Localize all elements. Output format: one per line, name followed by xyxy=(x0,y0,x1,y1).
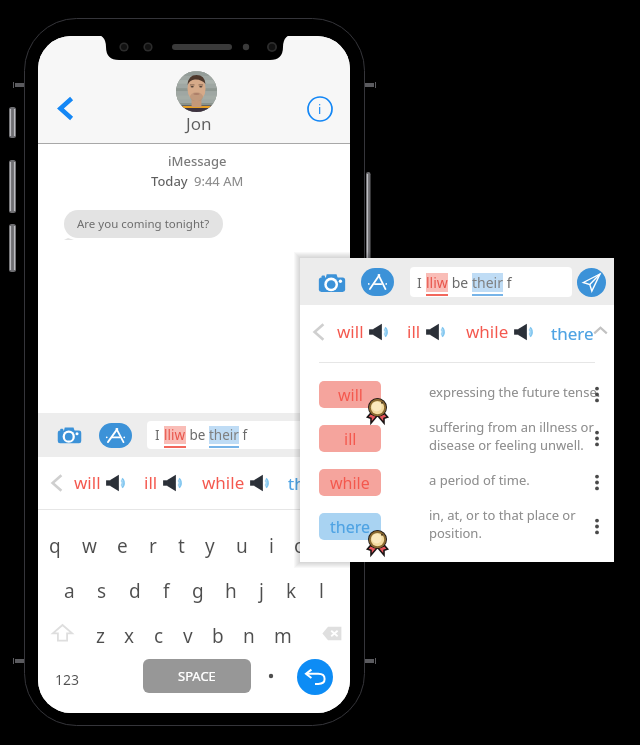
button[interactable]: SPACE xyxy=(143,659,251,693)
button[interactable]: Camera xyxy=(57,423,82,446)
button[interactable]: I xyxy=(147,421,350,449)
button[interactable]: z xyxy=(93,621,108,651)
staticText: y xyxy=(205,533,215,559)
button[interactable] xyxy=(267,672,275,680)
button[interactable]: h xyxy=(222,576,240,606)
button[interactable]: i xyxy=(266,531,277,561)
button[interactable]: n xyxy=(240,621,258,651)
staticText: ill xyxy=(407,320,421,343)
button[interactable]: v xyxy=(180,621,196,651)
button[interactable]: p xyxy=(324,531,342,561)
staticText: I xyxy=(417,273,426,292)
staticText: expressing the future tense. xyxy=(429,383,601,401)
button[interactable]: Details xyxy=(307,96,333,122)
button[interactable]: ill xyxy=(407,318,447,345)
staticText: f xyxy=(239,426,248,444)
button[interactable]: Back xyxy=(56,96,76,121)
staticText: f xyxy=(163,578,170,604)
button[interactable]: Previous xyxy=(309,320,329,344)
staticText: in, at, or to that place or xyxy=(429,506,576,524)
button[interactable]: while xyxy=(300,469,614,513)
staticText: their xyxy=(209,426,239,444)
button[interactable]: d xyxy=(126,576,144,606)
button[interactable]: ill xyxy=(300,425,614,469)
staticText: ill xyxy=(344,428,357,450)
button[interactable]: More options xyxy=(591,474,603,491)
button[interactable]: Collapse xyxy=(593,324,608,337)
staticText: while xyxy=(330,472,370,494)
button[interactable]: Shift xyxy=(51,623,74,643)
button[interactable] xyxy=(176,71,217,112)
button[interactable]: j xyxy=(256,576,267,606)
button[interactable]: Send xyxy=(577,268,606,297)
button[interactable]: c xyxy=(151,621,167,651)
button[interactable]: l xyxy=(316,576,327,606)
staticText: will xyxy=(74,471,101,494)
button[interactable]: will xyxy=(74,469,127,496)
staticText: there xyxy=(551,322,594,345)
staticText: Are you coming tonight? xyxy=(77,216,210,232)
button[interactable]: there xyxy=(300,513,614,557)
button[interactable]: a xyxy=(61,576,78,606)
button[interactable]: Camera xyxy=(318,269,346,295)
staticText: lliw xyxy=(426,273,448,292)
staticText: d xyxy=(129,578,141,604)
staticText: their xyxy=(472,273,503,292)
button[interactable]: will xyxy=(337,318,390,345)
staticText: position. xyxy=(429,524,482,542)
button[interactable]: r xyxy=(146,531,160,561)
staticText: a xyxy=(64,578,75,604)
button[interactable]: x xyxy=(121,621,138,651)
staticText: j xyxy=(259,578,264,604)
staticText: o xyxy=(294,533,306,559)
staticText: while xyxy=(202,471,245,494)
button[interactable]: More options xyxy=(591,386,603,403)
staticText: x xyxy=(124,623,135,649)
staticText: will xyxy=(338,384,363,406)
staticText: b xyxy=(212,623,224,649)
button[interactable]: t xyxy=(175,531,188,561)
staticText: f xyxy=(503,273,512,292)
button[interactable]: there xyxy=(549,319,596,348)
staticText: Jon xyxy=(186,112,212,135)
button[interactable]: f xyxy=(160,576,173,606)
button[interactable]: b xyxy=(209,621,227,651)
button[interactable]: More options xyxy=(591,518,603,535)
button[interactable]: q xyxy=(46,531,64,561)
staticText: suffering from an illness or xyxy=(429,418,594,436)
button[interactable]: w xyxy=(79,531,100,561)
button[interactable]: App Store xyxy=(99,423,132,448)
staticText: th xyxy=(288,472,305,495)
button[interactable]: e xyxy=(114,531,131,561)
button[interactable]: g xyxy=(189,576,207,606)
staticText: u xyxy=(236,533,248,559)
button[interactable]: m xyxy=(271,621,295,651)
button[interactable]: will xyxy=(300,381,614,425)
button[interactable]: ill xyxy=(144,469,184,496)
staticText: while xyxy=(466,320,509,343)
button[interactable]: while xyxy=(466,318,535,345)
button[interactable]: Previous xyxy=(47,471,67,495)
button[interactable]: while xyxy=(202,469,271,496)
button[interactable]: Return xyxy=(297,659,333,695)
staticText: h xyxy=(225,578,237,604)
button[interactable]: I xyxy=(410,267,572,297)
button[interactable]: Backspace xyxy=(322,626,342,641)
button[interactable]: App Store xyxy=(361,268,394,296)
staticText: n xyxy=(243,623,255,649)
staticText: t xyxy=(178,533,185,559)
button[interactable]: s xyxy=(94,576,110,606)
button[interactable]: y xyxy=(202,531,218,561)
button[interactable]: 123 xyxy=(51,666,84,693)
button[interactable]: o xyxy=(291,531,309,561)
button[interactable]: More options xyxy=(591,430,603,447)
staticText: I xyxy=(155,426,164,444)
button[interactable]: u xyxy=(233,531,251,561)
staticText: SPACE xyxy=(178,667,216,685)
button[interactable]: k xyxy=(283,576,300,606)
staticText: g xyxy=(192,578,204,604)
button[interactable]: Are you coming tonight? xyxy=(64,210,223,238)
staticText: disease or feeling unwell. xyxy=(429,436,584,454)
staticText: v xyxy=(183,623,193,649)
button[interactable]: th xyxy=(286,470,307,497)
